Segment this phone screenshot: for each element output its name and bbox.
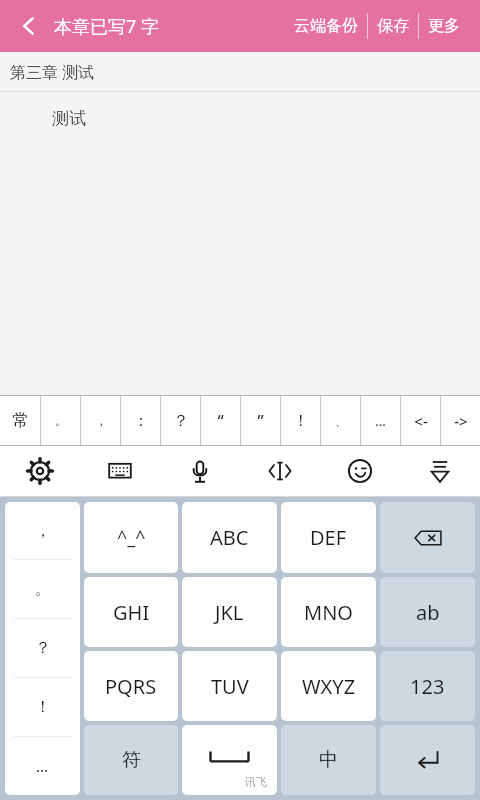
- staticText: 本章已写7 字: [54, 14, 159, 39]
- staticText: TUV: [211, 673, 249, 700]
- button[interactable]: ABC: [182, 502, 277, 573]
- button[interactable]: 回车: [380, 725, 475, 795]
- staticText: …: [375, 412, 386, 430]
- staticText: ：: [133, 411, 149, 431]
- button[interactable]: 收起键盘: [400, 446, 480, 496]
- button[interactable]: JKL: [182, 577, 277, 647]
- staticText: 常: [12, 410, 29, 431]
- button[interactable]: 空格: [182, 725, 277, 795]
- button[interactable]: 更多: [420, 10, 468, 42]
- button[interactable]: 中: [281, 725, 376, 795]
- button[interactable]: 键盘: [80, 446, 160, 496]
- staticText: 123: [410, 673, 445, 700]
- staticText: 。: [35, 579, 51, 599]
- button[interactable]: ！: [281, 396, 320, 445]
- button[interactable]: 返回: [10, 7, 48, 45]
- staticText: “: [217, 410, 224, 432]
- button[interactable]: ：: [121, 396, 160, 445]
- staticText: 、: [335, 413, 347, 428]
- button[interactable]: …: [361, 396, 400, 445]
- staticText: ab: [416, 599, 440, 626]
- button[interactable]: ->: [441, 396, 480, 445]
- button[interactable]: ”: [241, 396, 280, 445]
- button[interactable]: DEF: [281, 502, 376, 573]
- button[interactable]: 123: [380, 651, 475, 721]
- button[interactable]: 。: [41, 396, 80, 445]
- button[interactable]: ^_^: [84, 502, 178, 573]
- staticText: JKL: [215, 599, 244, 626]
- button[interactable]: 第三章 测试: [0, 52, 480, 91]
- staticText: ？: [173, 411, 189, 431]
- button[interactable]: 常: [0, 396, 40, 445]
- staticText: ABC: [210, 524, 249, 551]
- button[interactable]: ，: [81, 396, 120, 445]
- staticText: 测试: [52, 108, 86, 129]
- button[interactable]: 、: [321, 396, 360, 445]
- staticText: ^_^: [117, 525, 146, 550]
- staticText: 。: [55, 413, 67, 428]
- staticText: DEF: [310, 524, 347, 551]
- button[interactable]: TUV: [182, 651, 277, 721]
- staticText: ，: [95, 413, 107, 428]
- staticText: 第三章 测试: [10, 61, 95, 83]
- button[interactable]: PQRS: [84, 651, 178, 721]
- staticText: ！: [293, 411, 309, 431]
- button[interactable]: 保存: [369, 10, 417, 42]
- staticText: ，: [35, 521, 51, 541]
- staticText: ”: [257, 410, 264, 432]
- staticText: …: [36, 756, 49, 776]
- button[interactable]: ，: [5, 502, 80, 559]
- staticText: 中: [319, 748, 338, 772]
- button[interactable]: WXYZ: [281, 651, 376, 721]
- staticText: MNO: [304, 599, 353, 626]
- button[interactable]: ？: [161, 396, 200, 445]
- staticText: <-: [414, 411, 428, 431]
- staticText: 符: [122, 748, 141, 772]
- button[interactable]: ！: [5, 678, 80, 736]
- button[interactable]: “: [201, 396, 240, 445]
- staticText: ！: [35, 697, 51, 717]
- button[interactable]: 。: [5, 560, 80, 618]
- button[interactable]: 语音: [160, 446, 240, 496]
- button[interactable]: 移动光标: [240, 446, 320, 496]
- button[interactable]: 设置: [0, 446, 80, 496]
- button[interactable]: 表情: [320, 446, 400, 496]
- staticText: ->: [454, 411, 468, 431]
- button[interactable]: ？: [5, 619, 80, 677]
- staticText: 讯飞: [245, 775, 267, 789]
- button[interactable]: 云端备份: [286, 10, 366, 42]
- button[interactable]: MNO: [281, 577, 376, 647]
- staticText: ？: [35, 638, 51, 658]
- staticText: WXYZ: [302, 673, 356, 700]
- staticText: GHI: [113, 599, 150, 626]
- button[interactable]: <-: [401, 396, 440, 445]
- button[interactable]: GHI: [84, 577, 178, 647]
- staticText: PQRS: [105, 673, 157, 700]
- button[interactable]: 删除: [380, 502, 475, 573]
- button[interactable]: ab: [380, 577, 475, 647]
- button[interactable]: …: [5, 737, 80, 795]
- button[interactable]: 符: [84, 725, 178, 795]
